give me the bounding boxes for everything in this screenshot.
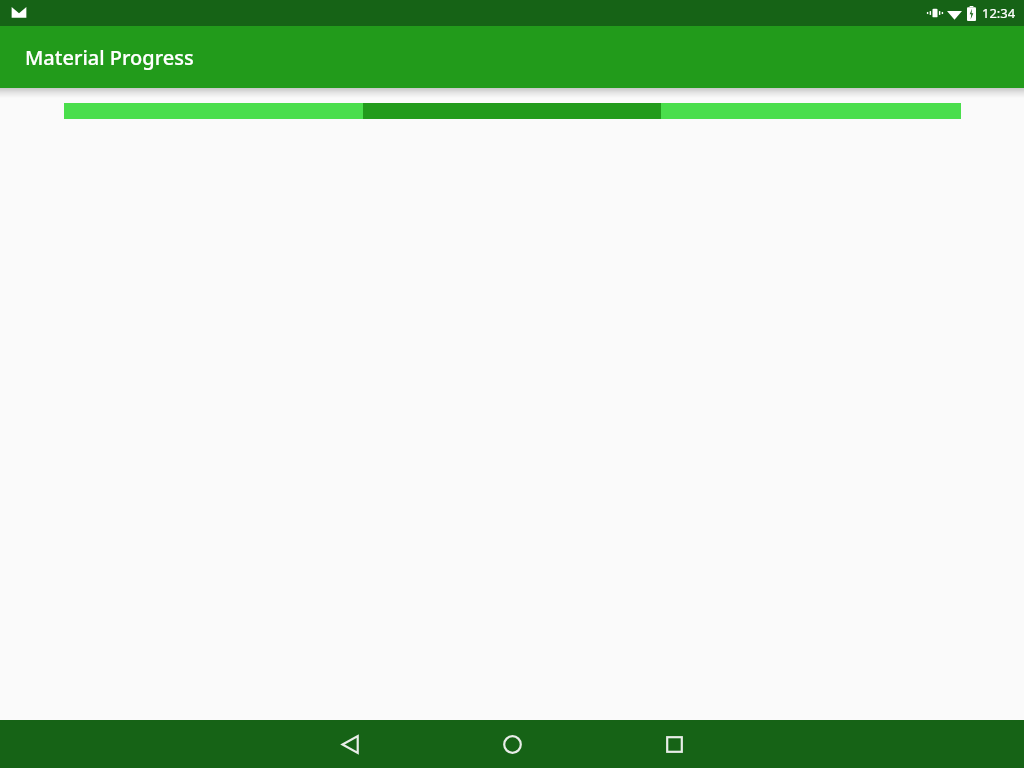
button[interactable]: Home (488, 720, 536, 768)
button[interactable]: Recent apps (650, 720, 698, 768)
button[interactable]: Back (326, 720, 374, 768)
staticText: 12:34 (982, 4, 1016, 22)
staticText: Material Progress (25, 44, 194, 71)
